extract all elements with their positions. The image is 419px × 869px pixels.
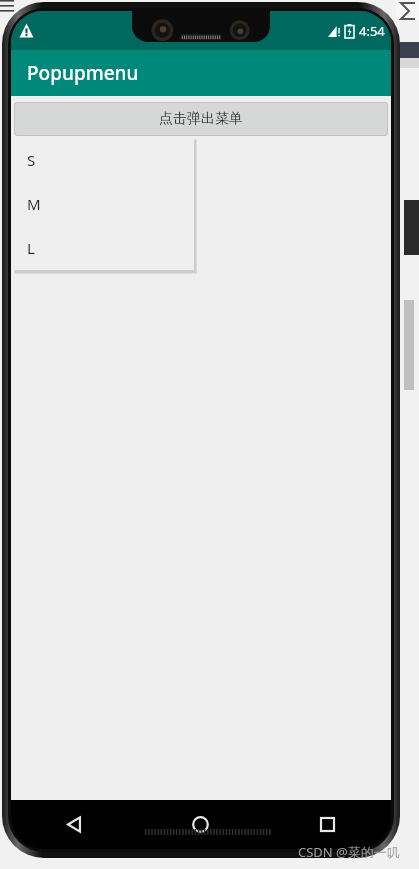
staticText: 点击弹出菜单 (159, 110, 243, 128)
staticText: 4:54 (359, 22, 385, 40)
button[interactable]: S (14, 138, 194, 182)
staticText: M (27, 194, 41, 214)
button[interactable]: Home (137, 800, 264, 849)
button[interactable]: L (14, 226, 194, 270)
button[interactable]: 点击弹出菜单 (14, 102, 388, 136)
button[interactable]: Recent apps (264, 800, 391, 849)
staticText: Popupmenu (27, 60, 139, 86)
other: Warning (19, 23, 34, 38)
button[interactable]: M (14, 182, 194, 226)
staticText: CSDN @菜的一叽 (298, 843, 400, 861)
staticText: S (27, 150, 36, 170)
button[interactable]: Back (11, 800, 137, 849)
staticText: L (27, 238, 35, 258)
